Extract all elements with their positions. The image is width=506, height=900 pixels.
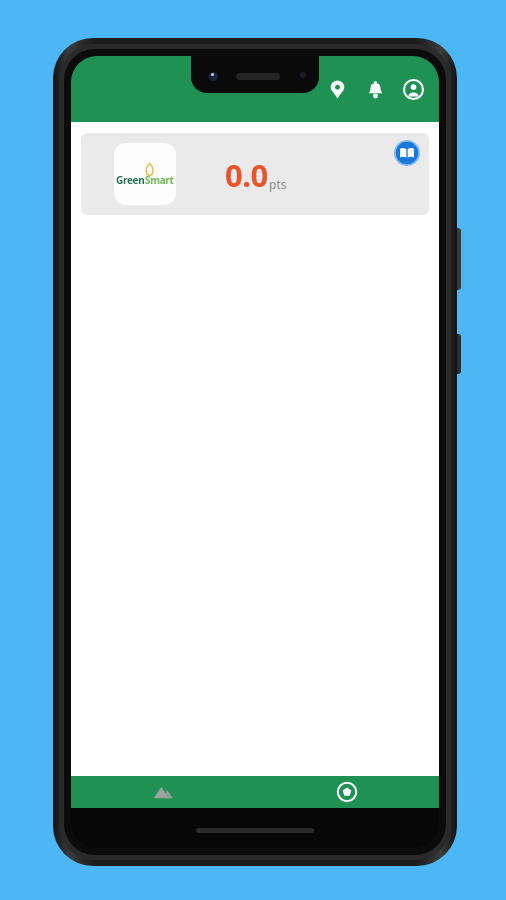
button[interactable]: Location — [321, 73, 353, 105]
staticText: Green — [116, 173, 145, 187]
button[interactable]: Gallery — [71, 776, 255, 808]
button[interactable]: Rewards — [255, 776, 439, 808]
button[interactable]: Green — [81, 133, 429, 215]
staticText: Smart — [145, 173, 174, 187]
button[interactable]: Catalog — [394, 140, 420, 166]
button[interactable]: Notifications — [359, 73, 391, 105]
staticText: pts — [269, 176, 287, 192]
staticText: 0.0 — [225, 154, 268, 196]
button[interactable]: Account — [397, 73, 429, 105]
